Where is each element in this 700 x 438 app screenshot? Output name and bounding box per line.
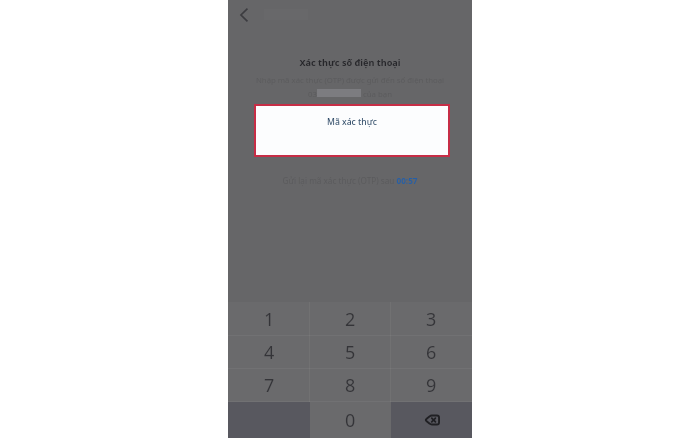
staticText: 4 xyxy=(264,340,275,365)
staticText: 5 xyxy=(345,340,356,365)
staticText: 8 xyxy=(345,373,356,398)
button[interactable]: 9 xyxy=(391,369,472,402)
button[interactable]: 4 xyxy=(228,336,310,369)
button[interactable]: Mã xác thực xyxy=(256,106,448,155)
button[interactable]: 6 xyxy=(391,336,472,369)
staticText: 9 xyxy=(426,373,437,398)
staticText: Xác thực số điện thoại xyxy=(228,56,472,68)
staticText: 6 xyxy=(426,340,437,365)
button[interactable]: 5 xyxy=(310,336,391,369)
staticText: 1 xyxy=(264,307,275,332)
button[interactable]: 3 xyxy=(391,302,472,336)
staticText: 3 xyxy=(426,307,437,332)
button[interactable]: 2 xyxy=(310,302,391,336)
button[interactable]: Back xyxy=(233,4,255,26)
button[interactable]: 1 xyxy=(228,302,310,336)
button[interactable]: Backspace xyxy=(391,402,472,438)
staticText: Gửi lại mã xác thực (OTP) sau 00:57 xyxy=(228,175,472,186)
button[interactable]: 8 xyxy=(310,369,391,402)
staticText: Mã xác thực xyxy=(327,116,377,128)
staticText: 0 xyxy=(345,408,356,433)
button[interactable]: 7 xyxy=(228,369,310,402)
staticText: 7 xyxy=(264,373,275,398)
button[interactable]: 0 xyxy=(310,402,391,438)
staticText: 2 xyxy=(345,307,356,332)
